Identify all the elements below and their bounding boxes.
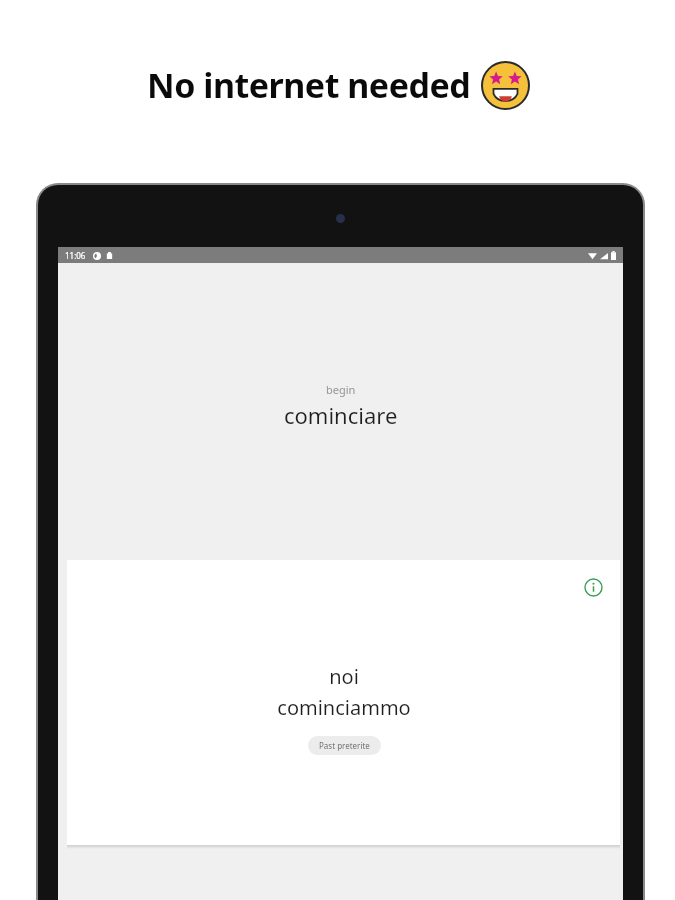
staticText: noi [329, 663, 359, 690]
staticText: 11:06 [65, 250, 86, 261]
staticText: cominciare [284, 400, 398, 430]
button[interactable]: Info [67, 560, 620, 845]
staticText: No internet needed [147, 62, 471, 108]
button[interactable]: Info [580, 574, 606, 600]
staticText: begin [326, 382, 356, 397]
staticText: Past preterite [319, 740, 370, 751]
button[interactable]: Past preterite [308, 736, 381, 755]
staticText: cominciammo [277, 694, 411, 721]
